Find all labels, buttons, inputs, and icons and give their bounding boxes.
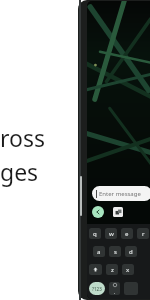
button[interactable]: ?123 (89, 282, 105, 295)
button[interactable]: Space (124, 282, 138, 295)
button[interactable]: Shift (89, 264, 102, 275)
button[interactable]: a (93, 246, 105, 257)
button[interactable]: w (105, 228, 117, 239)
staticText: ross (0, 122, 45, 153)
staticText: , (114, 289, 116, 294)
staticText: s (114, 248, 117, 256)
staticText: w (109, 230, 114, 238)
button[interactable]: r (137, 228, 149, 239)
staticText: ges (0, 156, 39, 187)
staticText: e (125, 230, 129, 238)
button[interactable]: Stickers (113, 207, 123, 217)
button[interactable]: x (122, 264, 134, 275)
button[interactable]: s (109, 246, 121, 257)
staticText: r (142, 230, 145, 238)
button[interactable]: z (106, 264, 118, 275)
staticText: q (93, 230, 97, 238)
staticText: a (97, 248, 101, 256)
button[interactable]: d (125, 246, 137, 257)
staticText: Enter message (99, 190, 141, 198)
staticText: x (126, 266, 130, 274)
button[interactable]: Expand actions (92, 206, 104, 218)
staticText: d (129, 248, 133, 256)
button[interactable]: e (121, 228, 133, 239)
button[interactable]: Enter message (92, 186, 150, 201)
staticText: z (111, 266, 114, 274)
button[interactable]: Emoji (109, 282, 120, 295)
button[interactable]: q (89, 228, 101, 239)
staticText: ?123 (92, 286, 102, 292)
